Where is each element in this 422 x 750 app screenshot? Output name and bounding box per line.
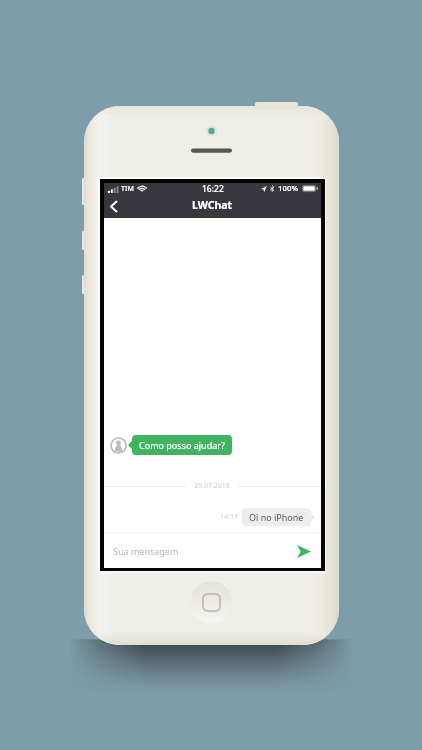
button[interactable]: Silent switch [82,178,86,205]
staticText: TIM [121,184,134,194]
button[interactable]: Back [104,197,123,216]
staticText: 14:17 [220,512,238,522]
button[interactable]: Oi no iPhone [242,508,311,526]
button[interactable]: Volume up [82,231,86,250]
staticText: 29.07.2018 [194,481,230,491]
button[interactable]: Send [294,541,314,561]
staticText: LWChat [192,198,233,212]
staticText: Como posso ajudar? [139,439,225,451]
button[interactable]: Power [255,102,298,108]
staticText: Sua mensagem [113,545,179,557]
button[interactable]: Volume down [82,275,86,294]
staticText: Oi no iPhone [249,511,304,523]
staticText: 100% [278,183,299,194]
staticText: 16:22 [202,183,224,194]
button[interactable]: Como posso ajudar? [132,435,232,455]
